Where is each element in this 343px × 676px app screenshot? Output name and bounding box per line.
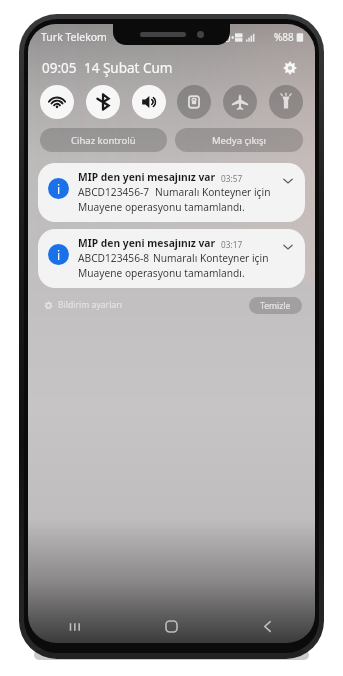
staticText: Numaralı Konteyner için bbox=[153, 251, 269, 265]
staticText: Temizle bbox=[260, 300, 291, 312]
button[interactable]: Bildirim ayarları bbox=[42, 297, 124, 313]
staticText: Medya çıkışı bbox=[212, 134, 266, 147]
staticText: Numaralı Konteyner için bbox=[155, 185, 271, 199]
button[interactable]: Airplane mode bbox=[223, 85, 257, 119]
staticText: Cihaz kontrolü bbox=[71, 134, 136, 147]
button[interactable]: Flashlight bbox=[269, 85, 303, 119]
button[interactable]: Bluetooth bbox=[86, 85, 120, 119]
button[interactable]: Recent apps bbox=[28, 610, 123, 643]
button[interactable]: Cihaz kontrolü bbox=[40, 128, 167, 152]
button[interactable]: Wi-Fi bbox=[40, 85, 74, 119]
button[interactable]: i bbox=[38, 229, 305, 288]
button[interactable]: Back bbox=[219, 610, 315, 643]
button[interactable]: Temizle bbox=[249, 297, 302, 314]
staticText: 09:05 bbox=[42, 59, 77, 77]
staticText: MIP den yeni mesajınız var bbox=[78, 170, 216, 184]
button[interactable]: Sound bbox=[132, 85, 166, 119]
staticText: Turk Telekom bbox=[41, 30, 107, 44]
button[interactable]: Auto rotate lock bbox=[177, 85, 211, 119]
staticText: i bbox=[57, 247, 61, 263]
button[interactable]: Medya çıkışı bbox=[175, 128, 303, 152]
button[interactable]: Home bbox=[123, 610, 219, 643]
staticText: ABCD123456-8 bbox=[78, 251, 150, 265]
button[interactable]: i bbox=[38, 163, 305, 222]
staticText: %88 bbox=[274, 30, 294, 44]
staticText: Bildirim ayarları bbox=[58, 299, 122, 311]
staticText: MIP den yeni mesajınız var bbox=[78, 236, 216, 250]
staticText: 03:17 bbox=[221, 239, 243, 250]
staticText: 14 Şubat Cum bbox=[84, 59, 173, 77]
staticText: 03:57 bbox=[221, 173, 243, 184]
staticText: ABCD123456-7 bbox=[78, 185, 150, 199]
button[interactable]: Expand notification bbox=[279, 238, 297, 256]
button[interactable]: Expand notification bbox=[279, 172, 297, 190]
staticText: i bbox=[57, 181, 61, 197]
staticText: Muayene operasyonu tamamlandı. bbox=[78, 200, 245, 214]
staticText: Muayene operasyonu tamamlandı. bbox=[78, 266, 245, 280]
button[interactable]: Settings bbox=[279, 57, 301, 79]
